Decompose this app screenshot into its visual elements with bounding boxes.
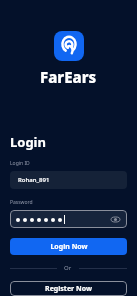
staticText: Or [64,264,72,272]
button[interactable]: Toggle password visibility [10,210,127,228]
button[interactable]: Rohan_891 [10,171,127,189]
button[interactable]: Login Now [10,238,127,255]
staticText: FarEars [40,67,97,87]
staticText: Rohan_891 [18,176,50,184]
staticText: Login Now [50,242,88,252]
staticText: Password [10,199,33,206]
button[interactable]: Toggle password visibility [110,214,121,225]
staticText: Register Now [45,284,92,294]
button[interactable]: Register Now [10,281,127,296]
staticText: Login [10,133,46,151]
staticText: Login ID [10,160,30,167]
